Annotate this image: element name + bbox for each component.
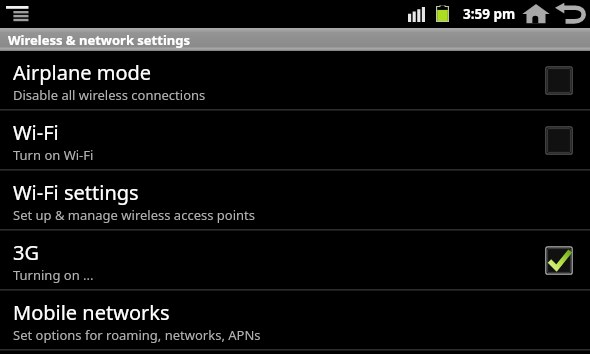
button[interactable]: Mobile networks bbox=[0, 291, 590, 349]
staticText: Set options for roaming, networks, APNs bbox=[13, 326, 261, 344]
staticText: Set up & manage wireless access points bbox=[13, 206, 255, 224]
button[interactable]: Menu bbox=[0, 0, 34, 28]
staticText: Wi-Fi bbox=[13, 119, 59, 146]
button[interactable]: Wi-Fi bbox=[0, 111, 590, 169]
button[interactable]: Toggle bbox=[545, 66, 573, 95]
staticText: Turn on Wi-Fi bbox=[13, 146, 94, 164]
button[interactable]: Toggle bbox=[545, 126, 573, 155]
button[interactable]: Airplane mode bbox=[0, 51, 590, 109]
button[interactable]: Back bbox=[555, 2, 586, 24]
staticText: Wi-Fi settings bbox=[13, 179, 139, 206]
staticText: Disable all wireless connections bbox=[13, 86, 206, 104]
staticText: Turning on ... bbox=[13, 266, 94, 284]
button[interactable]: Home bbox=[522, 3, 550, 24]
staticText: Wireless & network settings bbox=[8, 31, 190, 49]
button[interactable]: Wi-Fi settings bbox=[0, 171, 590, 229]
staticText: Mobile networks bbox=[13, 299, 170, 326]
button[interactable]: Toggle bbox=[545, 246, 573, 275]
staticText: 3G bbox=[13, 239, 39, 266]
staticText: 3:59 pm bbox=[463, 5, 516, 23]
button[interactable]: 3G bbox=[0, 231, 590, 289]
staticText: Airplane mode bbox=[13, 59, 152, 86]
